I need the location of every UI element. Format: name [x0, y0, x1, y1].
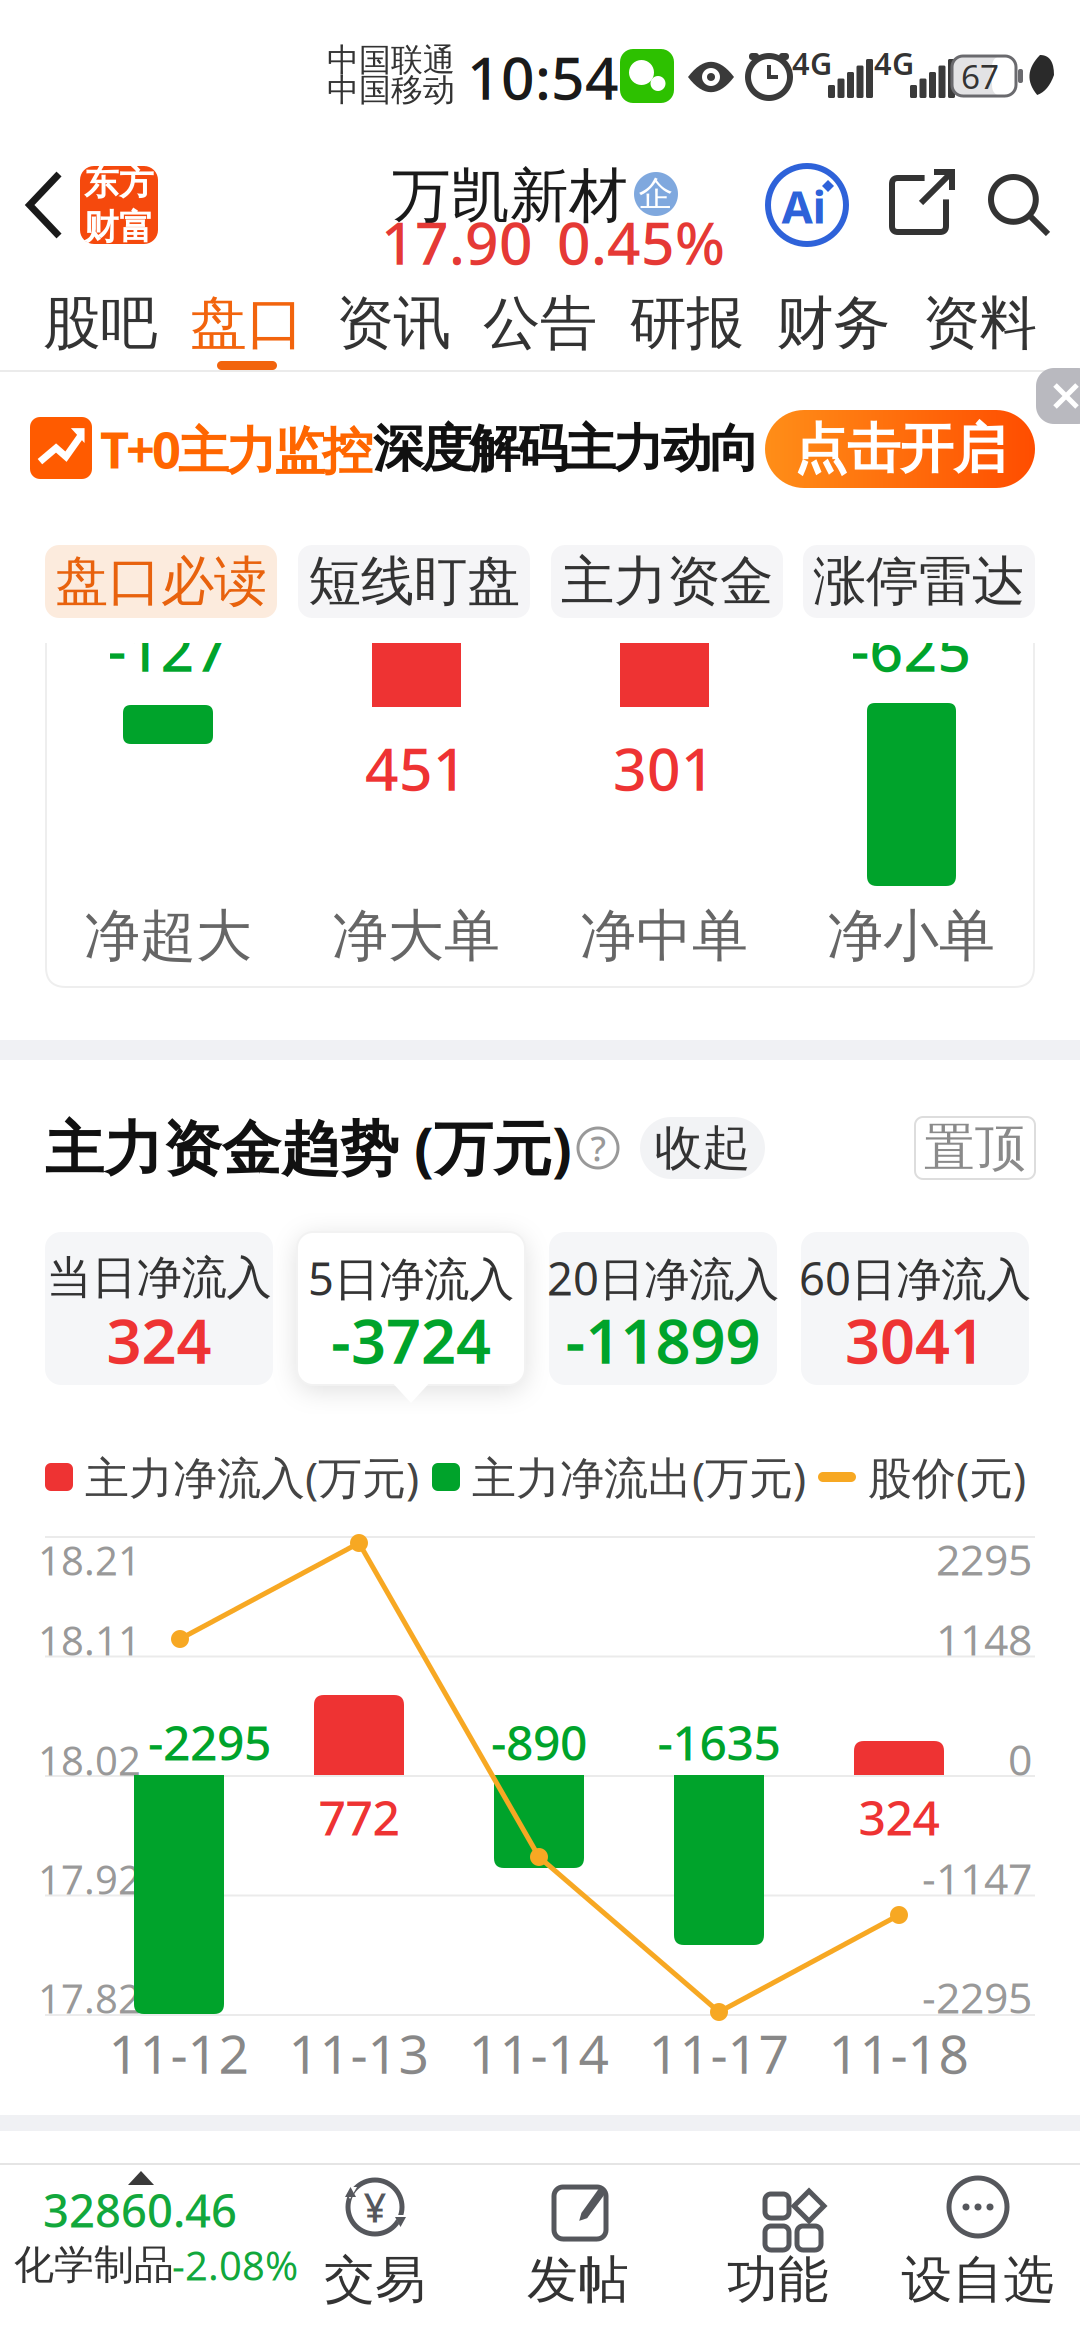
button[interactable]: 资讯 [320, 278, 467, 368]
staticText: -2295 [148, 1710, 271, 1774]
staticText: -2295 [922, 1969, 1032, 2025]
staticText: 主力净流入(万元) [85, 1448, 419, 1506]
staticText: 当日净流入 [46, 1250, 271, 1306]
staticText: 32860.46 [43, 2180, 237, 2240]
staticText: 公告 [483, 288, 597, 359]
staticText: -11899 [565, 1299, 760, 1381]
staticText: 11-13 [288, 2018, 429, 2088]
staticText: 短线盯盘 [308, 549, 520, 614]
staticText: 17.92 [38, 1852, 141, 1905]
staticText: 60日净流入 [799, 1248, 1031, 1308]
staticText: -3724 [331, 1299, 491, 1381]
button[interactable]: 化学制品板块 [0, 0, 290, 175]
staticText: ¥ [363, 2180, 386, 2233]
button[interactable]: 20日净流入 [0, 0, 228, 172]
button[interactable]: 股吧 [27, 278, 173, 368]
staticText: -1147 [922, 1850, 1032, 1906]
staticText: T+0主力监控 [100, 415, 373, 483]
button[interactable]: 功能 [0, 0, 170, 175]
staticText: 主力资金趋势 (万元) [45, 1108, 572, 1186]
staticText: 11-12 [108, 2018, 249, 2088]
staticText: 18.11 [38, 1613, 141, 1666]
staticText: 资料 [923, 288, 1037, 359]
staticText: 11-18 [828, 2018, 969, 2088]
staticText: 0 [1008, 1731, 1032, 1787]
staticText: 主力资金 [561, 549, 773, 614]
staticText: 0.45% [557, 203, 725, 281]
staticText: 20日净流入 [547, 1248, 779, 1308]
button[interactable]: 公告 [467, 278, 613, 368]
staticText: 中国联通 [327, 40, 455, 80]
staticText: 收起 [654, 1118, 750, 1177]
staticText: 17.82 [38, 1971, 141, 2024]
staticText: 点击开启 [794, 416, 1006, 482]
button[interactable]: 资料 [906, 278, 1053, 368]
staticText: 研报 [630, 288, 744, 359]
staticText: 净中单 [580, 902, 748, 970]
staticText: 化学制品 [14, 2240, 174, 2289]
button[interactable]: 当日净流入 [0, 0, 228, 172]
staticText: ? [590, 1125, 605, 1171]
button[interactable]: 60日净流入 [0, 0, 228, 172]
staticText: 财务 [776, 288, 890, 359]
staticText: 交易 [324, 2249, 426, 2311]
staticText: Ai [781, 176, 826, 236]
staticText: 5日净流入 [308, 1248, 514, 1308]
staticText: 万凯新材 [392, 160, 628, 232]
staticText: 18.21 [38, 1533, 141, 1586]
staticText: 4G [792, 43, 832, 83]
button[interactable]: 发帖 [0, 0, 170, 175]
staticText: -2.08% [172, 2238, 298, 2291]
staticText: 17.90 [381, 203, 533, 281]
staticText: 3041 [845, 1299, 985, 1381]
staticText: 324 [106, 1299, 211, 1381]
staticText: 资讯 [336, 288, 450, 359]
staticText: 451 [365, 729, 467, 807]
staticText: 发帖 [527, 2249, 629, 2311]
staticText: 设自选 [901, 2249, 1054, 2311]
staticText: 4G [874, 43, 914, 83]
staticText: -625 [850, 610, 971, 688]
staticText: 中国移动 [327, 70, 455, 110]
staticText: 涨停雷达 [813, 549, 1025, 614]
staticText: 盘口必读 [55, 549, 267, 614]
button[interactable]: 5日净流入 [0, 0, 228, 172]
staticText: 772 [318, 1785, 399, 1849]
staticText: 深度解码主力动向 [373, 418, 760, 480]
button[interactable]: 盘口 [173, 278, 320, 368]
staticText: 11-14 [468, 2018, 609, 2088]
staticText: 股价(元) [868, 1448, 1026, 1506]
button[interactable]: ¥ [0, 0, 170, 175]
staticText: 财富 [84, 206, 154, 249]
staticText: 301 [613, 729, 715, 807]
staticText: 净小单 [827, 902, 995, 970]
staticText: 净大单 [332, 902, 500, 970]
staticText: 18.02 [38, 1733, 141, 1786]
button[interactable]: 研报 [613, 278, 760, 368]
button[interactable]: 设自选 [0, 0, 170, 175]
staticText: -890 [491, 1710, 587, 1774]
button[interactable]: 财务 [760, 278, 906, 368]
staticText: 67 [961, 54, 999, 98]
staticText: 企 [638, 173, 673, 215]
staticText: -1635 [657, 1710, 780, 1774]
staticText: 盘口 [190, 288, 304, 359]
staticText: 10:54 [467, 38, 619, 116]
staticText: 净超大 [84, 902, 252, 970]
staticText: 11-17 [648, 2018, 789, 2088]
staticText: -127 [107, 610, 228, 688]
staticText: 1148 [936, 1611, 1032, 1667]
